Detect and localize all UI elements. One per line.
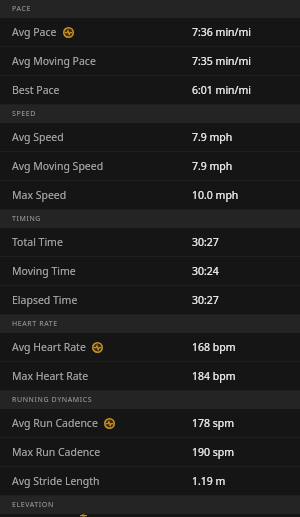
staticText: Best Pace [12, 83, 60, 97]
staticText: Avg Pace [12, 25, 57, 39]
staticText: PACE [12, 4, 31, 14]
staticText: 7:36 min/mi [192, 25, 252, 39]
staticText: Max Run Cadence [12, 445, 101, 459]
staticText: Avg Stride Length [12, 474, 100, 488]
staticText: 6:01 min/mi [192, 83, 252, 97]
staticText: Elapsed Time [12, 293, 78, 307]
staticText: 10.0 mph [192, 188, 239, 202]
button[interactable]: Avg Speed [0, 123, 300, 152]
button[interactable]: Avg Stride Length [0, 467, 300, 496]
staticText: Avg Run Cadence [12, 416, 98, 430]
staticText: HEART RATE [12, 319, 58, 329]
other: Personal record [63, 27, 74, 38]
staticText: 168 bpm [192, 340, 236, 354]
other: Personal record [104, 418, 115, 429]
staticText: Moving Time [12, 264, 76, 278]
button[interactable]: Elapsed Time [0, 286, 300, 315]
other: Personal record [78, 514, 89, 517]
staticText: Avg Moving Pace [12, 54, 96, 68]
button[interactable]: Avg Heart Rate [0, 333, 300, 362]
staticText: Avg Speed [12, 130, 64, 144]
staticText: 30:24 [192, 264, 219, 278]
staticText: Max Speed [12, 188, 67, 202]
button[interactable]: Total Ascent [0, 514, 300, 517]
staticText: 7:35 min/mi [192, 54, 252, 68]
button[interactable]: Max Heart Rate [0, 362, 300, 391]
staticText: SPEED [12, 109, 36, 119]
staticText: 190 spm [192, 445, 235, 459]
button[interactable]: Moving Time [0, 257, 300, 286]
button[interactable]: Max Run Cadence [0, 438, 300, 467]
staticText: Max Heart Rate [12, 369, 89, 383]
staticText: Total Time [12, 235, 63, 249]
staticText: 184 bpm [192, 369, 236, 383]
staticText: 178 spm [192, 416, 235, 430]
button[interactable]: Best Pace [0, 76, 300, 105]
button[interactable]: Avg Moving Pace [0, 47, 300, 76]
staticText: 30:27 [192, 293, 219, 307]
button[interactable]: Avg Pace [0, 18, 300, 47]
staticText: 7.9 mph [192, 159, 233, 173]
staticText: RUNNING DYNAMICS [12, 395, 93, 405]
staticText: 7.9 mph [192, 130, 233, 144]
staticText: Avg Heart Rate [12, 340, 86, 354]
staticText: TIMING [12, 214, 42, 224]
staticText: 30:27 [192, 235, 219, 249]
button[interactable]: Max Speed [0, 181, 300, 210]
other: Personal record [92, 342, 103, 353]
staticText: Avg Moving Speed [12, 159, 104, 173]
button[interactable]: Avg Moving Speed [0, 152, 300, 181]
button[interactable]: Total Time [0, 228, 300, 257]
staticText: 1.19 m [192, 474, 226, 488]
button[interactable]: Avg Run Cadence [0, 409, 300, 438]
staticText: ELEVATION [12, 500, 54, 510]
